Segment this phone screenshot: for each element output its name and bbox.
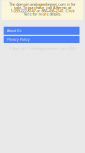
staticText: Privacy Policy [7, 37, 30, 42]
staticText: Copyright © analogwebnews.com 2024 [9, 45, 76, 51]
button[interactable]: Privacy Policy [2, 36, 79, 43]
button[interactable]: About Us [2, 27, 79, 35]
staticText: About Us [7, 28, 22, 33]
staticText: The domain analogwebnews.com is for sale… [9, 1, 76, 17]
